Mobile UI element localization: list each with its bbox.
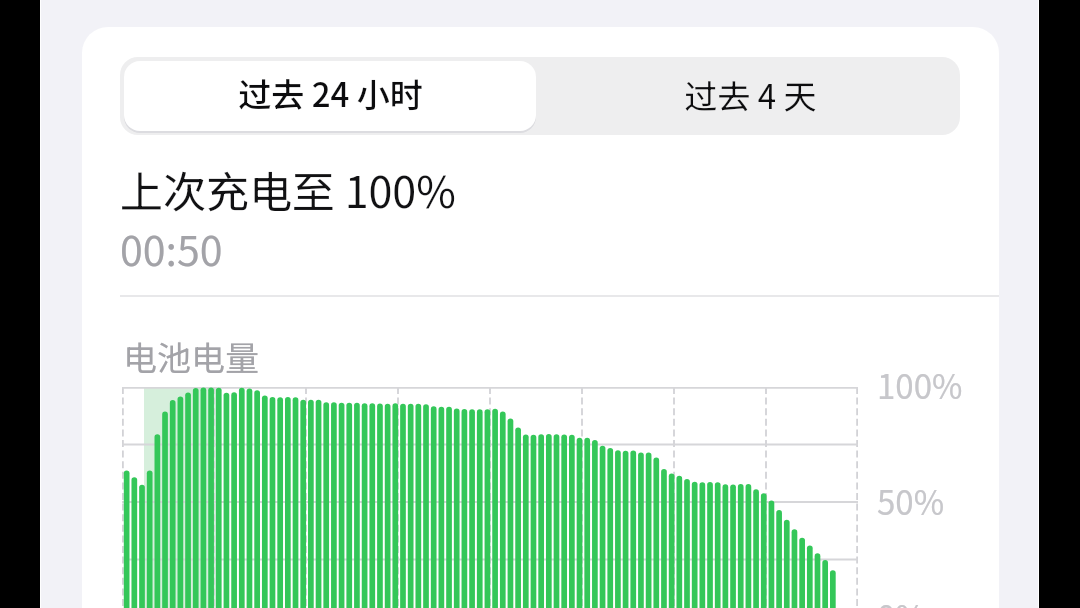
button[interactable]: 过去 4 天 bbox=[540, 57, 960, 135]
staticText: 0% bbox=[877, 592, 926, 608]
staticText: 过去 24 小时 bbox=[238, 69, 423, 117]
staticText: 00:50 bbox=[120, 218, 223, 277]
staticText: 电池电量 bbox=[123, 332, 259, 381]
staticText: 上次充电至 100% bbox=[120, 158, 456, 220]
staticText: 50% bbox=[877, 477, 945, 525]
staticText: 过去 4 天 bbox=[684, 71, 817, 119]
other: Battery level chart bbox=[122, 387, 858, 608]
staticText: 100% bbox=[877, 361, 963, 409]
button[interactable]: 过去 24 小时 bbox=[124, 61, 536, 131]
